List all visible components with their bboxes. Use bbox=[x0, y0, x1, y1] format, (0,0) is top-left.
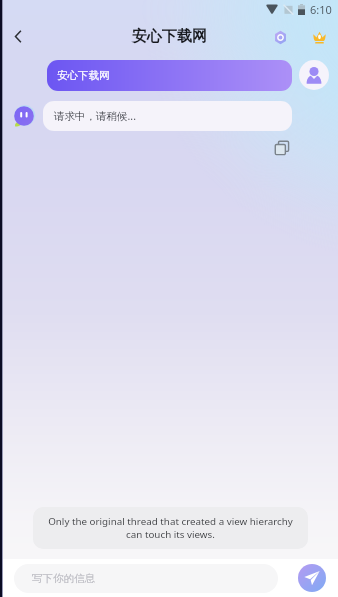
staticText: Only the original thread that created a … bbox=[41, 515, 300, 541]
staticText: 写下你的信息 bbox=[32, 572, 95, 585]
staticText: 请求中，请稍候... bbox=[54, 109, 136, 123]
button[interactable]: Settings bbox=[267, 24, 293, 50]
staticText: 安心下载网 bbox=[132, 27, 207, 46]
button[interactable]: 安心下载网 bbox=[47, 60, 292, 91]
staticText: 安心下载网 bbox=[57, 69, 110, 82]
button[interactable]: 写下你的信息 bbox=[14, 564, 278, 593]
button[interactable]: Back bbox=[0, 18, 37, 55]
staticText: 6:10 bbox=[310, 2, 332, 17]
button[interactable]: Send bbox=[298, 564, 326, 592]
button[interactable]: VIP bbox=[306, 24, 332, 50]
button[interactable]: Copy bbox=[274, 140, 290, 156]
button[interactable]: 请求中，请稍候... bbox=[43, 101, 292, 131]
